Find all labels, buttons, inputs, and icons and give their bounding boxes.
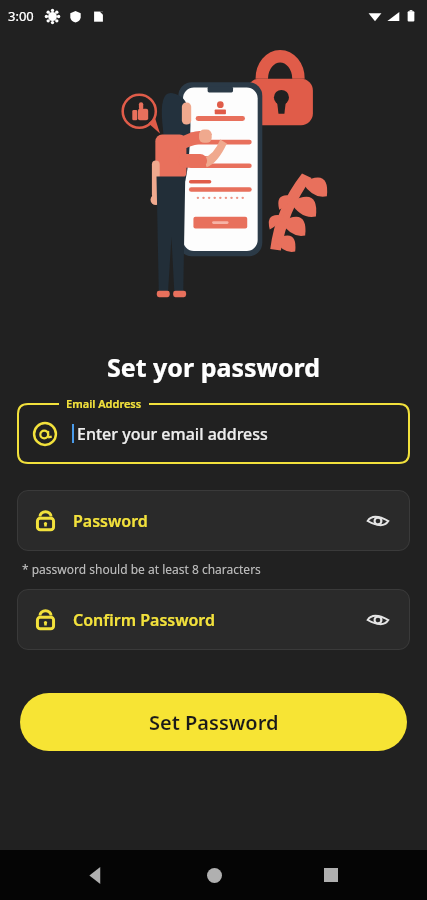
button[interactable]: Show password [363, 506, 393, 536]
staticText: Enter your email address [77, 423, 268, 445]
staticText: Set Password [149, 709, 279, 736]
staticText: Password [73, 510, 363, 532]
staticText: Set yor password [107, 350, 321, 384]
button[interactable]: Home [192, 853, 236, 897]
staticText: Confirm Password [73, 609, 363, 631]
staticText: 3:00 [8, 7, 34, 25]
button[interactable]: Set Password [20, 693, 407, 751]
button[interactable]: Email Address [17, 403, 410, 464]
staticText: Email Address [66, 396, 142, 411]
button[interactable]: Show password [363, 605, 393, 635]
staticText: * password should be at least 8 characte… [22, 561, 261, 577]
other: Email [32, 421, 58, 447]
button[interactable]: Back [74, 853, 118, 897]
button[interactable]: Recent apps [309, 853, 353, 897]
button[interactable]: Confirm Password [17, 589, 410, 650]
button[interactable]: Password [17, 490, 410, 551]
